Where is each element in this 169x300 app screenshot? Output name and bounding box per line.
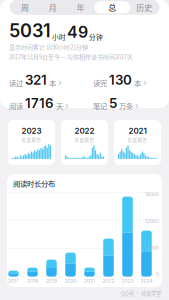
button[interactable]: 年: [66, 1, 94, 13]
staticText: 1716: [25, 95, 54, 111]
staticText: 历史: [136, 1, 152, 13]
button[interactable]: 2023: [8, 120, 55, 165]
staticText: 2018: [27, 278, 38, 284]
staticText: 5: [109, 95, 117, 111]
staticText: 2021: [128, 126, 146, 136]
staticText: 阅读时长分布: [13, 178, 55, 189]
staticText: 读过: [9, 77, 25, 88]
staticText: 2020: [64, 278, 76, 284]
staticText: 万条: [117, 101, 135, 111]
staticText: 130: [109, 72, 132, 88]
button[interactable]: 读完: [93, 72, 160, 88]
staticText: 0: [156, 272, 159, 277]
button[interactable]: 阅读: [9, 95, 93, 111]
staticText: 年度报告: [74, 136, 94, 143]
button[interactable]: 总: [94, 1, 130, 13]
staticText: 2022: [74, 126, 94, 136]
staticText: 月: [49, 1, 57, 13]
staticText: 本: [132, 77, 143, 88]
staticText: 2017年11月9日至今 — 与你相伴读书时间2017天: [9, 52, 133, 61]
staticText: 321: [25, 72, 47, 88]
staticText: 5031: [9, 20, 51, 42]
staticText: 18000: [145, 192, 159, 197]
staticText: 49: [67, 22, 88, 42]
button[interactable]: 月: [39, 1, 67, 13]
staticText: 12000: [145, 218, 159, 224]
staticText: 笔记: [93, 101, 109, 111]
staticText: 2017: [8, 278, 19, 284]
staticText: 年度报告: [21, 136, 41, 143]
staticText: 2022: [102, 278, 114, 284]
staticText: 阅读: [9, 101, 25, 111]
staticText: 周: [21, 1, 29, 13]
staticText: 本: [47, 77, 58, 88]
staticText: ›: [58, 77, 62, 88]
button[interactable]: 读过: [9, 72, 93, 88]
staticText: 2023: [121, 278, 133, 284]
button[interactable]: 2021: [114, 120, 161, 165]
staticText: ›: [65, 100, 69, 111]
staticText: 显示时间累计 1030小时21分钟: [9, 43, 88, 51]
staticText: 天: [54, 101, 65, 111]
staticText: 总: [108, 1, 116, 13]
button[interactable]: 历史: [130, 1, 158, 13]
staticText: 2023: [21, 126, 41, 136]
button[interactable]: 2022: [61, 120, 108, 165]
staticText: 年: [76, 1, 84, 13]
staticText: 2019: [46, 278, 57, 284]
staticText: 年度报告: [127, 136, 147, 143]
button[interactable]: 笔记: [93, 95, 160, 111]
staticText: 小时: [51, 32, 67, 42]
staticText: QQ号 · 共享学堂: [121, 289, 161, 297]
staticText: 读完: [93, 77, 109, 88]
staticText: 2024: [140, 278, 152, 284]
staticText: ›: [143, 77, 147, 88]
staticText: 2021: [84, 278, 95, 284]
staticText: 分钟: [88, 32, 103, 42]
staticText: 6000: [147, 245, 159, 251]
staticText: ›: [135, 100, 139, 111]
button[interactable]: 周: [11, 1, 39, 13]
